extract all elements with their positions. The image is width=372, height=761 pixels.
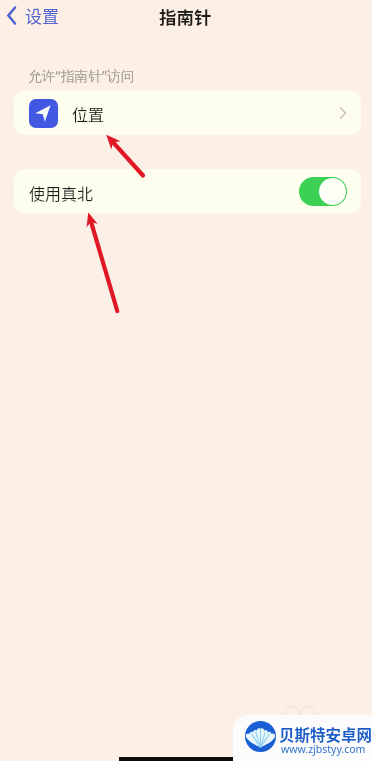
staticText: 位置 xyxy=(72,102,105,125)
staticText: 使用真北 xyxy=(29,181,94,204)
staticText: 设置 xyxy=(25,3,59,28)
staticText: www.zjbstyy.com xyxy=(281,742,366,756)
button[interactable]: 位置 xyxy=(14,91,361,135)
staticText: 指南针 xyxy=(159,4,212,29)
staticText: 贝斯特安卓网 xyxy=(279,723,372,745)
button[interactable]: 使用真北 开关 xyxy=(299,177,347,206)
button[interactable]: 设置 xyxy=(4,2,61,28)
staticText: 允许“指南针”访问 xyxy=(28,66,135,85)
